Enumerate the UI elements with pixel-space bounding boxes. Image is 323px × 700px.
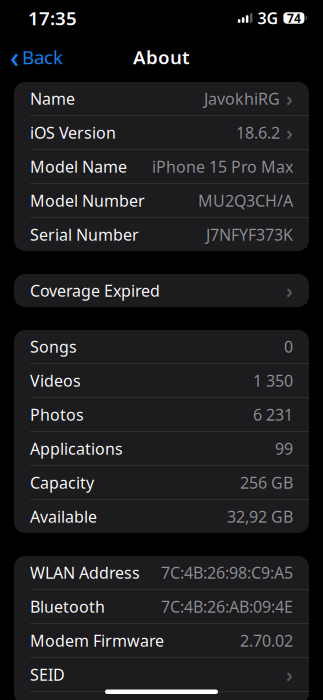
staticText: Coverage Expired (30, 280, 160, 301)
staticText: SEID (30, 664, 65, 685)
staticText: 1 350 (253, 370, 293, 391)
staticText: › (286, 661, 293, 688)
staticText: 74 (287, 10, 301, 26)
staticText: Videos (30, 370, 81, 391)
staticText: Available (30, 506, 97, 527)
button[interactable]: SEID (14, 658, 309, 691)
button[interactable]: Name (14, 82, 309, 115)
staticText: Model Name (30, 156, 127, 177)
staticText: 7C:4B:26:AB:09:4E (161, 596, 293, 617)
staticText: J7NFYF373K (206, 224, 293, 245)
staticText: Modem Firmware (30, 630, 164, 651)
staticText: 6 231 (253, 404, 293, 425)
button[interactable]: ‹ (0, 40, 73, 74)
staticText: 0 (284, 336, 293, 357)
staticText: 2.70.02 (240, 630, 293, 651)
staticText: 32,92 GB (227, 506, 293, 527)
staticText: ‹ (10, 38, 19, 76)
staticText: › (286, 277, 293, 304)
staticText: Back (22, 45, 63, 69)
staticText: WLAN Address (30, 562, 140, 583)
staticText: Songs (30, 336, 77, 357)
staticText: 99 (275, 438, 293, 459)
staticText: Model Number (30, 190, 145, 211)
staticText: JavokhiRG (204, 88, 280, 109)
staticText: › (286, 119, 293, 146)
staticText: Photos (30, 404, 84, 425)
staticText: Serial Number (30, 224, 139, 245)
button[interactable]: iOS Version (14, 116, 309, 149)
staticText: 256 GB (240, 472, 293, 493)
staticText: 17:35 (28, 6, 77, 30)
staticText: About (133, 45, 190, 69)
staticText: › (286, 85, 293, 112)
staticText: iOS Version (30, 122, 116, 143)
staticText: 18.6.2 (236, 122, 280, 143)
staticText: iPhone 15 Pro Max (152, 156, 293, 177)
staticText: MU2Q3CH/A (198, 190, 293, 211)
staticText: Applications (30, 438, 123, 459)
staticText: 3G (257, 7, 278, 29)
staticText: Capacity (30, 472, 94, 493)
staticText: 7C:4B:26:98:C9:A5 (161, 562, 293, 583)
button[interactable]: Coverage Expired (14, 274, 309, 307)
staticText: Name (30, 88, 75, 109)
staticText: Bluetooth (30, 596, 105, 617)
